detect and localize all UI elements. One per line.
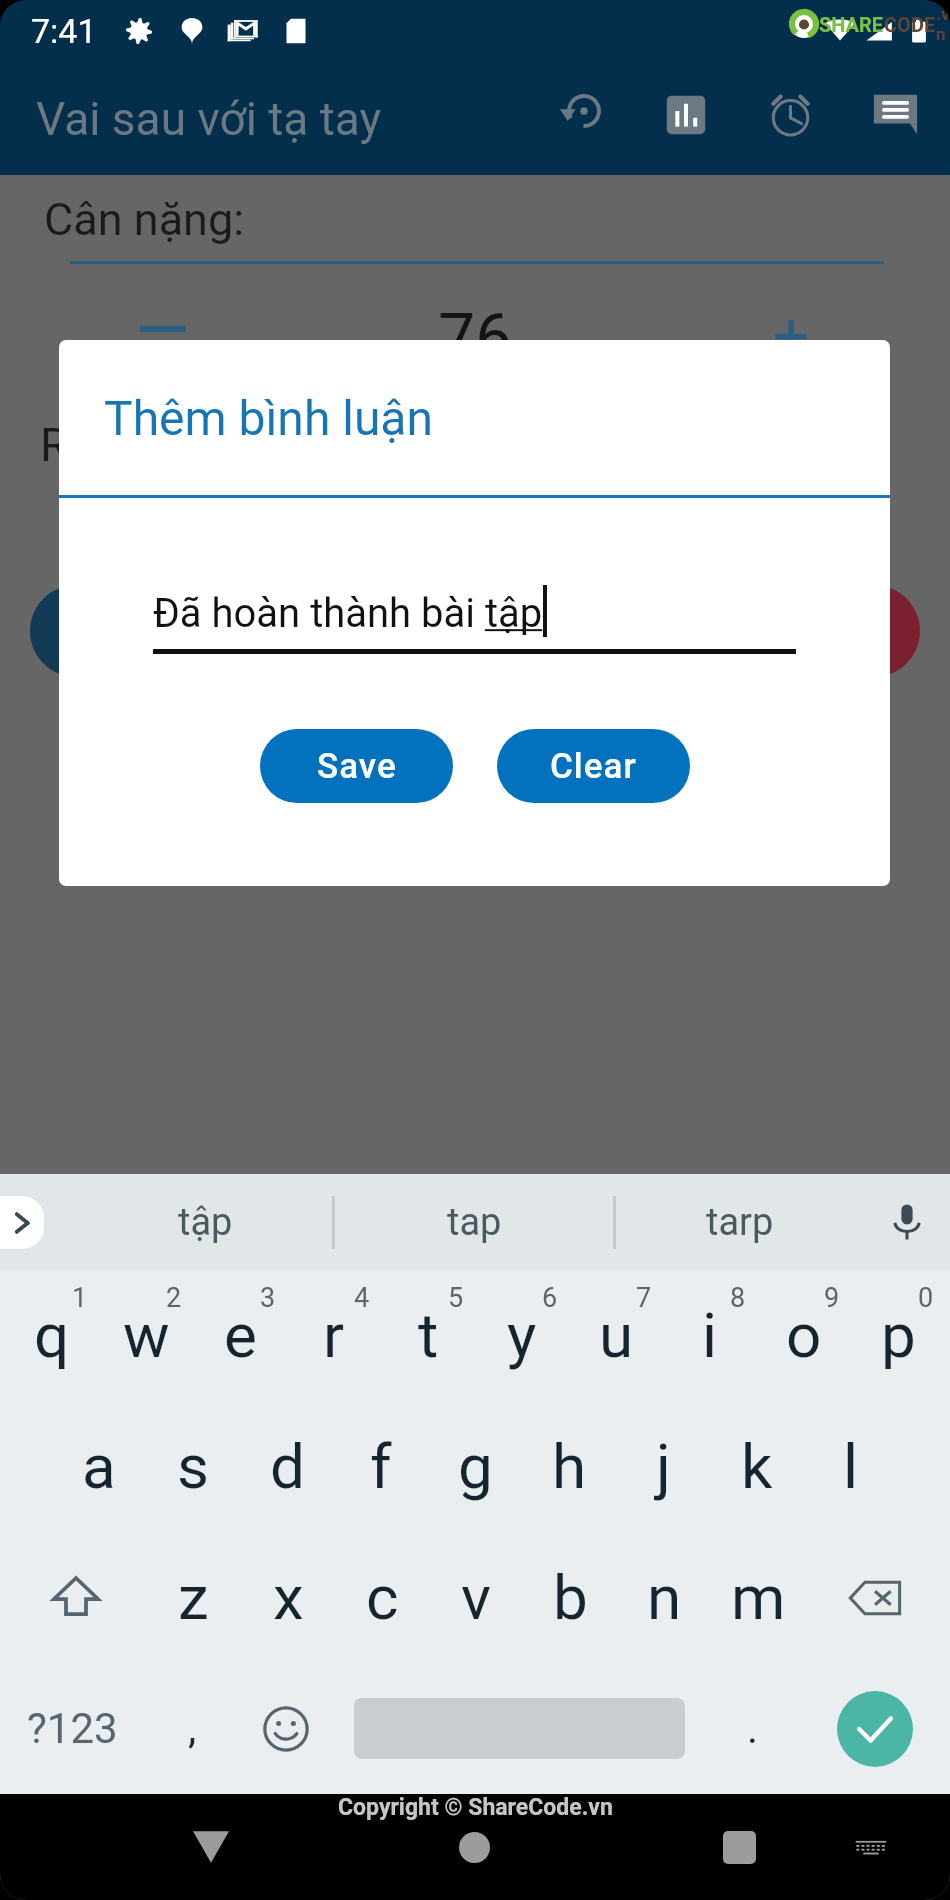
button[interactable]: z (146, 1532, 241, 1663)
button[interactable]: 1 (5, 1270, 99, 1401)
staticText: Save (317, 746, 397, 787)
button[interactable]: 4 (287, 1270, 381, 1401)
button[interactable]: ?123 (0, 1663, 145, 1794)
staticText: 7 (636, 1282, 652, 1314)
button[interactable]: h (522, 1401, 616, 1532)
staticText: SHARE (819, 13, 884, 36)
button[interactable]: x (241, 1532, 335, 1663)
button[interactable]: a (52, 1401, 146, 1532)
staticText: k (741, 1430, 773, 1503)
button[interactable]: Backspace (805, 1532, 945, 1663)
staticText: Reps: (40, 418, 154, 472)
staticText: q (34, 1299, 70, 1372)
button[interactable]: Expand suggestions (0, 1196, 44, 1249)
button[interactable]: 6 (475, 1270, 569, 1401)
staticText: Copyright © ShareCode.vn (338, 1794, 613, 1821)
staticText: l (843, 1430, 859, 1503)
staticText: w (123, 1299, 170, 1372)
button[interactable]: m (711, 1532, 805, 1663)
button[interactable]: c (335, 1532, 429, 1663)
staticText: tap (447, 1200, 502, 1245)
staticText: Đã hoàn thành bài tập (153, 590, 543, 637)
staticText: s (177, 1430, 209, 1503)
staticText: m (731, 1561, 786, 1634)
button[interactable]: Comments (843, 62, 948, 167)
button[interactable]: Space (333, 1663, 706, 1794)
staticText: tarp (706, 1200, 774, 1245)
staticText: CODE (884, 13, 936, 36)
staticText: Cân nặng: (44, 193, 245, 246)
staticText: h (552, 1430, 587, 1503)
staticText: e (224, 1299, 257, 1372)
button[interactable]: s (146, 1401, 240, 1532)
button[interactable]: l (804, 1401, 898, 1532)
button[interactable]: tập (78, 1174, 332, 1270)
button[interactable]: 5 (381, 1270, 475, 1401)
button[interactable]: Recents (659, 1794, 819, 1900)
staticText: ?123 (27, 1704, 118, 1753)
staticText: .vn (936, 4, 950, 44)
button[interactable]: tarp (616, 1174, 863, 1270)
button[interactable]: Switch keyboard (831, 1794, 911, 1900)
staticText: v (461, 1561, 492, 1634)
staticText: 0 (918, 1282, 934, 1314)
button[interactable]: n (617, 1532, 711, 1663)
button[interactable]: tap (335, 1174, 613, 1270)
button[interactable]: v (429, 1532, 523, 1663)
button[interactable]: Clear (497, 729, 690, 803)
button[interactable]: f (334, 1401, 428, 1532)
button[interactable]: 9 (757, 1270, 851, 1401)
button[interactable]: g (428, 1401, 522, 1532)
button[interactable]: Home (394, 1794, 555, 1900)
button[interactable]: j (616, 1401, 710, 1532)
button[interactable]: , (145, 1663, 239, 1794)
staticText: z (178, 1561, 209, 1634)
staticText: f (370, 1430, 392, 1503)
staticText: + (773, 300, 810, 375)
button[interactable]: Rest timer (738, 62, 843, 167)
staticText: Thêm bình luận (104, 390, 433, 446)
button[interactable]: 2 (99, 1270, 193, 1401)
staticText: 76 (438, 300, 513, 377)
button[interactable]: k (710, 1401, 804, 1532)
staticText: 3 (260, 1282, 276, 1314)
staticText: , (188, 1704, 197, 1753)
button[interactable]: . (706, 1663, 800, 1794)
staticText: y (507, 1299, 537, 1372)
staticText: Vai sau với tạ tay (36, 92, 382, 146)
button[interactable]: Back (131, 1794, 291, 1900)
staticText: . (747, 1704, 759, 1753)
button[interactable]: Enter (800, 1663, 950, 1794)
button[interactable]: Voice input (863, 1174, 950, 1270)
staticText: u (599, 1299, 634, 1372)
button[interactable]: 3 (193, 1270, 287, 1401)
button[interactable]: d (240, 1401, 334, 1532)
staticText: 2 (166, 1282, 182, 1314)
staticText: d (270, 1430, 305, 1503)
staticText: j (656, 1430, 671, 1503)
button[interactable]: 0 (851, 1270, 945, 1401)
button[interactable]: 8 (663, 1270, 757, 1401)
button[interactable]: History (528, 62, 633, 167)
staticText: o (786, 1299, 822, 1372)
staticText: t (418, 1299, 439, 1372)
button[interactable]: 7 (569, 1270, 663, 1401)
button[interactable]: Emoji (239, 1663, 333, 1794)
staticText: b (553, 1561, 588, 1634)
button[interactable]: Shift (5, 1532, 146, 1663)
staticText: 9 (824, 1282, 840, 1314)
staticText: 6 (542, 1282, 558, 1314)
staticText: g (458, 1430, 493, 1503)
staticText: Clear (550, 746, 637, 787)
staticText: 7:41 (31, 11, 97, 51)
staticText: c (366, 1561, 399, 1634)
button[interactable]: Save (260, 729, 453, 803)
staticText: a (82, 1430, 116, 1503)
staticText: tập (178, 1200, 233, 1245)
staticText: x (273, 1561, 304, 1634)
staticText: i (702, 1299, 718, 1372)
staticText: 4 (354, 1282, 370, 1314)
staticText: r (323, 1299, 345, 1372)
button[interactable]: b (523, 1532, 617, 1663)
button[interactable]: Statistics (633, 62, 738, 167)
